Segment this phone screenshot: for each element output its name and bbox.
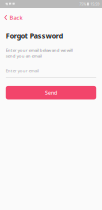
staticText: Enter your email <box>6 68 39 73</box>
staticText: Forgot Password <box>6 31 63 41</box>
staticText: 15:59 <box>90 1 99 7</box>
staticText: 75% <box>79 1 86 6</box>
button[interactable]: Send <box>6 86 96 99</box>
staticText: Send <box>45 89 57 96</box>
button[interactable]: Back <box>0 8 102 24</box>
staticText: Back <box>9 14 22 21</box>
staticText: Enter your email below and we will send … <box>6 47 73 59</box>
